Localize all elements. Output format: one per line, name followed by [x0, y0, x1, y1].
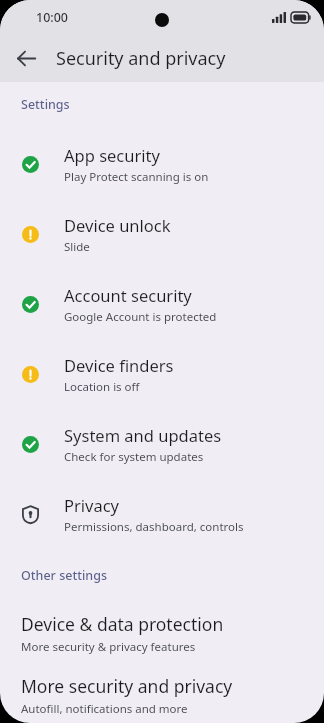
staticText: Google Account is protected [64, 309, 217, 325]
button[interactable]: More security and privacy [0, 668, 324, 723]
button[interactable]: Device unlock [0, 199, 324, 269]
staticText: Account security [64, 284, 192, 306]
button[interactable]: Device finders [0, 339, 324, 409]
button[interactable]: Device & data protection [0, 598, 324, 668]
staticText: System and updates [64, 424, 222, 446]
staticText: Device finders [64, 354, 174, 376]
staticText: Autofill, notifications and more [21, 701, 188, 717]
button[interactable]: Privacy [0, 479, 324, 549]
staticText: Permissions, dashboard, controls [64, 519, 244, 535]
staticText: More security & privacy features [21, 639, 196, 655]
button[interactable]: System and updates [0, 409, 324, 479]
staticText: Check for system updates [64, 449, 204, 465]
staticText: Location is off [64, 379, 140, 395]
staticText: Settings [21, 96, 70, 113]
staticText: Other settings [21, 567, 108, 584]
staticText: More security and privacy [21, 674, 233, 698]
button[interactable]: Back [6, 38, 46, 78]
staticText: Device unlock [64, 214, 171, 236]
staticText: App security [64, 144, 160, 166]
staticText: Device & data protection [21, 612, 224, 636]
staticText: Slide [64, 239, 90, 255]
staticText: Play Protect scanning is on [64, 169, 209, 185]
staticText: 10:00 [36, 9, 69, 26]
button[interactable]: App security [0, 129, 324, 199]
button[interactable]: Account security [0, 269, 324, 339]
staticText: Privacy [64, 494, 120, 516]
staticText: Security and privacy [56, 46, 226, 71]
